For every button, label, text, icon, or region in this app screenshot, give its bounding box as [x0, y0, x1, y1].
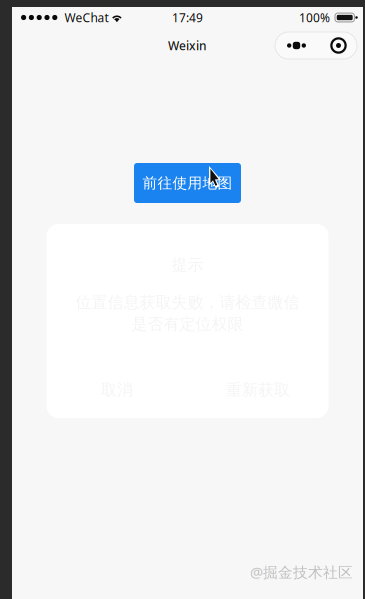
- staticText: 前往使用地图: [142, 174, 232, 192]
- staticText: 是否有定位权限: [131, 314, 243, 334]
- staticText: 17:49: [172, 9, 203, 25]
- button[interactable]: Mini program menu: [275, 32, 357, 59]
- staticText: WeChat: [64, 9, 108, 25]
- staticText: 100%: [299, 9, 330, 25]
- staticText: 重新获取: [226, 380, 290, 400]
- button[interactable]: 前往使用地图: [134, 163, 241, 203]
- staticText: Weixin: [168, 37, 207, 53]
- staticText: 取消: [101, 380, 133, 400]
- staticText: @掘金技术社区: [250, 562, 353, 582]
- staticText: 提示: [171, 255, 203, 275]
- staticText: 位置信息获取失败，请检查微信: [75, 293, 299, 312]
